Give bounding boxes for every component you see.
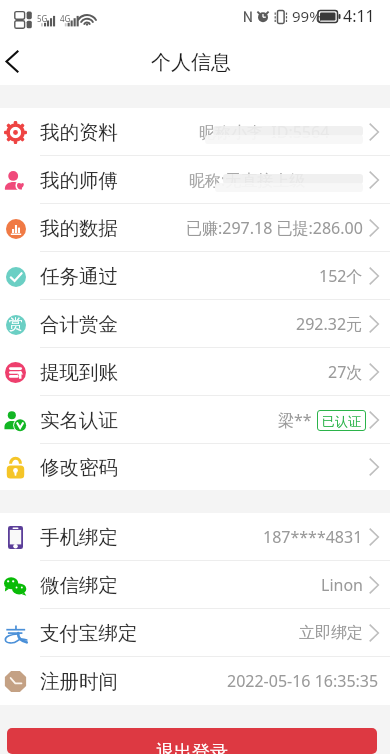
staticText: Linon (321, 574, 363, 596)
button[interactable]: 我的资料 (0, 108, 390, 156)
button[interactable]: 实名认证 (0, 396, 390, 444)
staticText: 修改密码 (40, 455, 118, 480)
staticText: 昵称小李 ID:5564 (199, 121, 330, 143)
staticText: 我的数据 (40, 216, 118, 241)
staticText: 个人信息 (151, 50, 231, 75)
button[interactable]: 退出登录 (7, 728, 377, 754)
staticText: 注册时间 (40, 669, 118, 694)
staticText: 已赚:297.18 已提:286.00 (186, 217, 363, 239)
staticText: 4:11 (343, 5, 375, 27)
staticText: 昵称:无直接上级 (189, 169, 306, 191)
button[interactable]: 手机绑定 (0, 513, 390, 561)
button[interactable]: 赏 (0, 300, 390, 348)
staticText: 27次 (328, 361, 363, 383)
staticText: 5G (37, 13, 48, 24)
staticText: 已认证 (322, 413, 361, 429)
staticText: 立即绑定 (299, 623, 363, 643)
staticText: 我的师傅 (40, 168, 118, 193)
staticText: 我的资料 (40, 120, 118, 145)
staticText: 手机绑定 (40, 525, 118, 550)
staticText: 实名认证 (40, 408, 118, 433)
button[interactable]: 我的数据 (0, 204, 390, 252)
staticText: 任务通过 (40, 264, 118, 289)
button[interactable]: 支付宝绑定 (0, 609, 390, 657)
staticText: 提现到账 (40, 360, 118, 385)
staticText: 梁** (278, 409, 312, 431)
staticText: 退出登录 (156, 741, 228, 754)
staticText: 4G (60, 13, 71, 24)
staticText: 微信绑定 (40, 573, 118, 598)
staticText: 支付宝绑定 (40, 621, 138, 646)
staticText: 合计赏金 (40, 312, 118, 337)
staticText: 292.32元 (296, 313, 363, 335)
staticText: 152个 (319, 265, 363, 287)
button[interactable]: 注册时间 (0, 657, 390, 705)
staticText: 187****4831 (263, 526, 363, 548)
staticText: 99% (292, 6, 322, 26)
button[interactable]: 任务通过 (0, 252, 390, 300)
button[interactable]: 提现到账 (0, 348, 390, 396)
staticText: 赏 (9, 316, 23, 334)
staticText: 2022-05-16 16:35:35 (227, 670, 379, 692)
button[interactable]: 微信绑定 (0, 561, 390, 609)
button[interactable]: 我的师傅 (0, 156, 390, 204)
button[interactable]: 修改密码 (0, 444, 390, 490)
button[interactable]: Back (0, 39, 24, 83)
